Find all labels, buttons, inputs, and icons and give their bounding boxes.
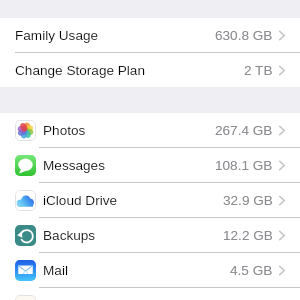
staticText: Photos (43, 123, 86, 138)
staticText: 32.9 GB (223, 193, 273, 208)
staticText: 108.1 GB (215, 158, 273, 173)
button[interactable]: Backups (0, 218, 300, 252)
staticText: Messages (43, 158, 105, 173)
staticText: 630.8 GB (215, 28, 273, 43)
staticText: Mail (43, 263, 68, 278)
staticText: Backups (43, 228, 96, 243)
staticText: 12.2 GB (223, 228, 273, 243)
button[interactable]: Mail (0, 253, 300, 287)
button[interactable]: iCloud Drive (0, 183, 300, 217)
button[interactable]: Photos (0, 113, 300, 147)
button[interactable]: Messages (0, 148, 300, 182)
button[interactable]: Change Storage Plan (0, 53, 300, 87)
staticText: iCloud Drive (43, 193, 118, 208)
staticText: 2 TB (244, 63, 273, 78)
button[interactable]: Family Usage (0, 18, 300, 52)
staticText: Change Storage Plan (15, 63, 145, 78)
staticText: Family Usage (15, 28, 99, 43)
staticText: 267.4 GB (215, 123, 273, 138)
staticText: 4.5 GB (230, 263, 273, 278)
